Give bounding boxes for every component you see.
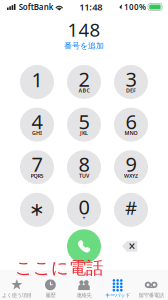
button[interactable]: 6 bbox=[114, 108, 148, 142]
staticText: DEF bbox=[126, 87, 136, 94]
button[interactable]: 9 bbox=[114, 150, 148, 184]
button[interactable]: 2 bbox=[67, 65, 101, 99]
staticText: 留守番電話 bbox=[139, 292, 164, 298]
button[interactable]: 5 bbox=[67, 108, 101, 142]
staticText: 3 bbox=[125, 66, 136, 92]
staticText: 2 bbox=[78, 66, 89, 92]
button[interactable]: 連絡先 bbox=[67, 271, 101, 300]
button[interactable]: よく使う項目 bbox=[0, 271, 34, 300]
button[interactable]: # bbox=[114, 193, 148, 227]
staticText: 11:48 bbox=[79, 1, 102, 13]
staticText: 6 bbox=[125, 108, 136, 135]
staticText: GHI bbox=[32, 129, 42, 137]
staticText: JKL bbox=[80, 129, 88, 137]
button[interactable]: 1 bbox=[20, 65, 54, 99]
button[interactable]: 4 bbox=[20, 108, 54, 142]
staticText: + bbox=[82, 215, 85, 222]
button[interactable]: Call bbox=[67, 229, 101, 263]
button[interactable]: 3 bbox=[114, 65, 148, 99]
staticText: ここに電話 bbox=[15, 257, 103, 278]
staticText: 7 bbox=[31, 151, 42, 177]
staticText: SoftBank bbox=[19, 2, 54, 12]
button[interactable]: キーパッド bbox=[101, 271, 134, 300]
staticText: WXYZ bbox=[124, 172, 138, 179]
staticText: 連絡先 bbox=[76, 292, 91, 298]
button[interactable]: 番号を追加 bbox=[64, 42, 104, 51]
staticText: ABC bbox=[78, 87, 89, 94]
staticText: 0 bbox=[78, 193, 89, 220]
staticText: 1 bbox=[31, 66, 42, 93]
button[interactable]: Delete bbox=[121, 240, 139, 253]
staticText: 9 bbox=[125, 151, 136, 177]
staticText: よく使う項目 bbox=[2, 292, 32, 298]
staticText: PQRS bbox=[30, 172, 43, 179]
staticText: 5 bbox=[78, 108, 89, 135]
staticText: TUV bbox=[79, 172, 89, 179]
staticText: # bbox=[125, 195, 137, 220]
button[interactable]: 8 bbox=[67, 150, 101, 184]
staticText: キーパッド bbox=[105, 292, 130, 298]
staticText: ∗ bbox=[29, 199, 45, 220]
staticText: 8 bbox=[78, 151, 89, 177]
staticText: 148 bbox=[67, 17, 100, 42]
staticText: MNO bbox=[124, 129, 137, 137]
button[interactable]: 7 bbox=[20, 150, 54, 184]
button[interactable]: 履歴 bbox=[34, 271, 67, 300]
button[interactable]: 0 bbox=[67, 193, 101, 227]
staticText: 履歴 bbox=[45, 292, 55, 298]
staticText: 4 bbox=[31, 108, 42, 135]
button[interactable]: ∗ bbox=[20, 193, 54, 227]
staticText: 100% bbox=[124, 2, 146, 12]
staticText: 番号を追加 bbox=[64, 41, 104, 51]
button[interactable]: 留守番電話 bbox=[134, 271, 168, 300]
